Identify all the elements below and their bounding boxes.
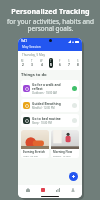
staticText: Thursday, 5 May — [22, 53, 46, 57]
button[interactable]: Mark complete — [72, 103, 77, 108]
staticText: T — [50, 59, 52, 63]
button[interactable]: W — [39, 58, 44, 68]
staticText: Yoga · 20 min — [23, 154, 39, 157]
button[interactable]: M — [20, 58, 25, 68]
button[interactable]: Insights — [53, 185, 62, 194]
staticText: 2 — [22, 63, 24, 67]
button[interactable]: Evening Stretch — [21, 130, 49, 158]
button[interactable]: Go to bed routine — [21, 114, 79, 127]
staticText: Mindful · 12:30 PM — [32, 106, 55, 110]
button[interactable]: Activity — [38, 185, 47, 194]
staticText: 5 — [50, 63, 52, 67]
button[interactable]: Morning Flow — [51, 130, 79, 158]
staticText: Go for a walk and reflect — [32, 82, 72, 90]
button[interactable]: Profile — [68, 185, 77, 194]
staticText: 6 — [59, 63, 61, 67]
staticText: S — [77, 59, 79, 63]
staticText: S — [68, 59, 70, 63]
staticText: 7 — [68, 63, 70, 67]
staticText: F — [59, 59, 61, 63]
staticText: Go to bed routine — [32, 116, 61, 120]
staticText: 4 — [41, 63, 43, 67]
button[interactable]: Home — [23, 185, 32, 194]
button[interactable]: T — [49, 58, 53, 68]
staticText: Guided Breathing — [32, 101, 61, 105]
staticText: Personalized Tracking — [11, 6, 90, 16]
staticText: 8 — [77, 63, 79, 67]
staticText: 9:41 — [21, 39, 27, 43]
staticText: W — [40, 59, 43, 63]
button[interactable]: Mark complete — [72, 118, 77, 123]
button[interactable]: T — [30, 58, 34, 68]
staticText: for your activities, habits and personal… — [7, 17, 94, 33]
button[interactable]: S — [67, 58, 71, 68]
button[interactable]: Go for a walk and reflect — [21, 80, 79, 97]
staticText: Things to do — [21, 72, 47, 78]
button[interactable]: Add new activity — [69, 172, 78, 181]
staticText: M — [21, 59, 24, 63]
staticText: Morning Flow — [53, 150, 73, 154]
staticText: T — [31, 59, 33, 63]
staticText: 3 — [31, 63, 33, 67]
button[interactable]: Guided Breathing — [21, 99, 79, 112]
staticText: May Session — [22, 45, 41, 49]
button[interactable]: F — [58, 58, 62, 68]
staticText: Fitness · 15 min — [53, 154, 71, 157]
staticText: Evening Stretch — [23, 150, 45, 154]
button[interactable]: Completed — [72, 86, 77, 91]
button[interactable]: S — [76, 58, 80, 68]
staticText: Outdoors · 10:00 AM — [32, 91, 57, 95]
staticText: Sleep · 10:30 PM — [32, 121, 52, 125]
